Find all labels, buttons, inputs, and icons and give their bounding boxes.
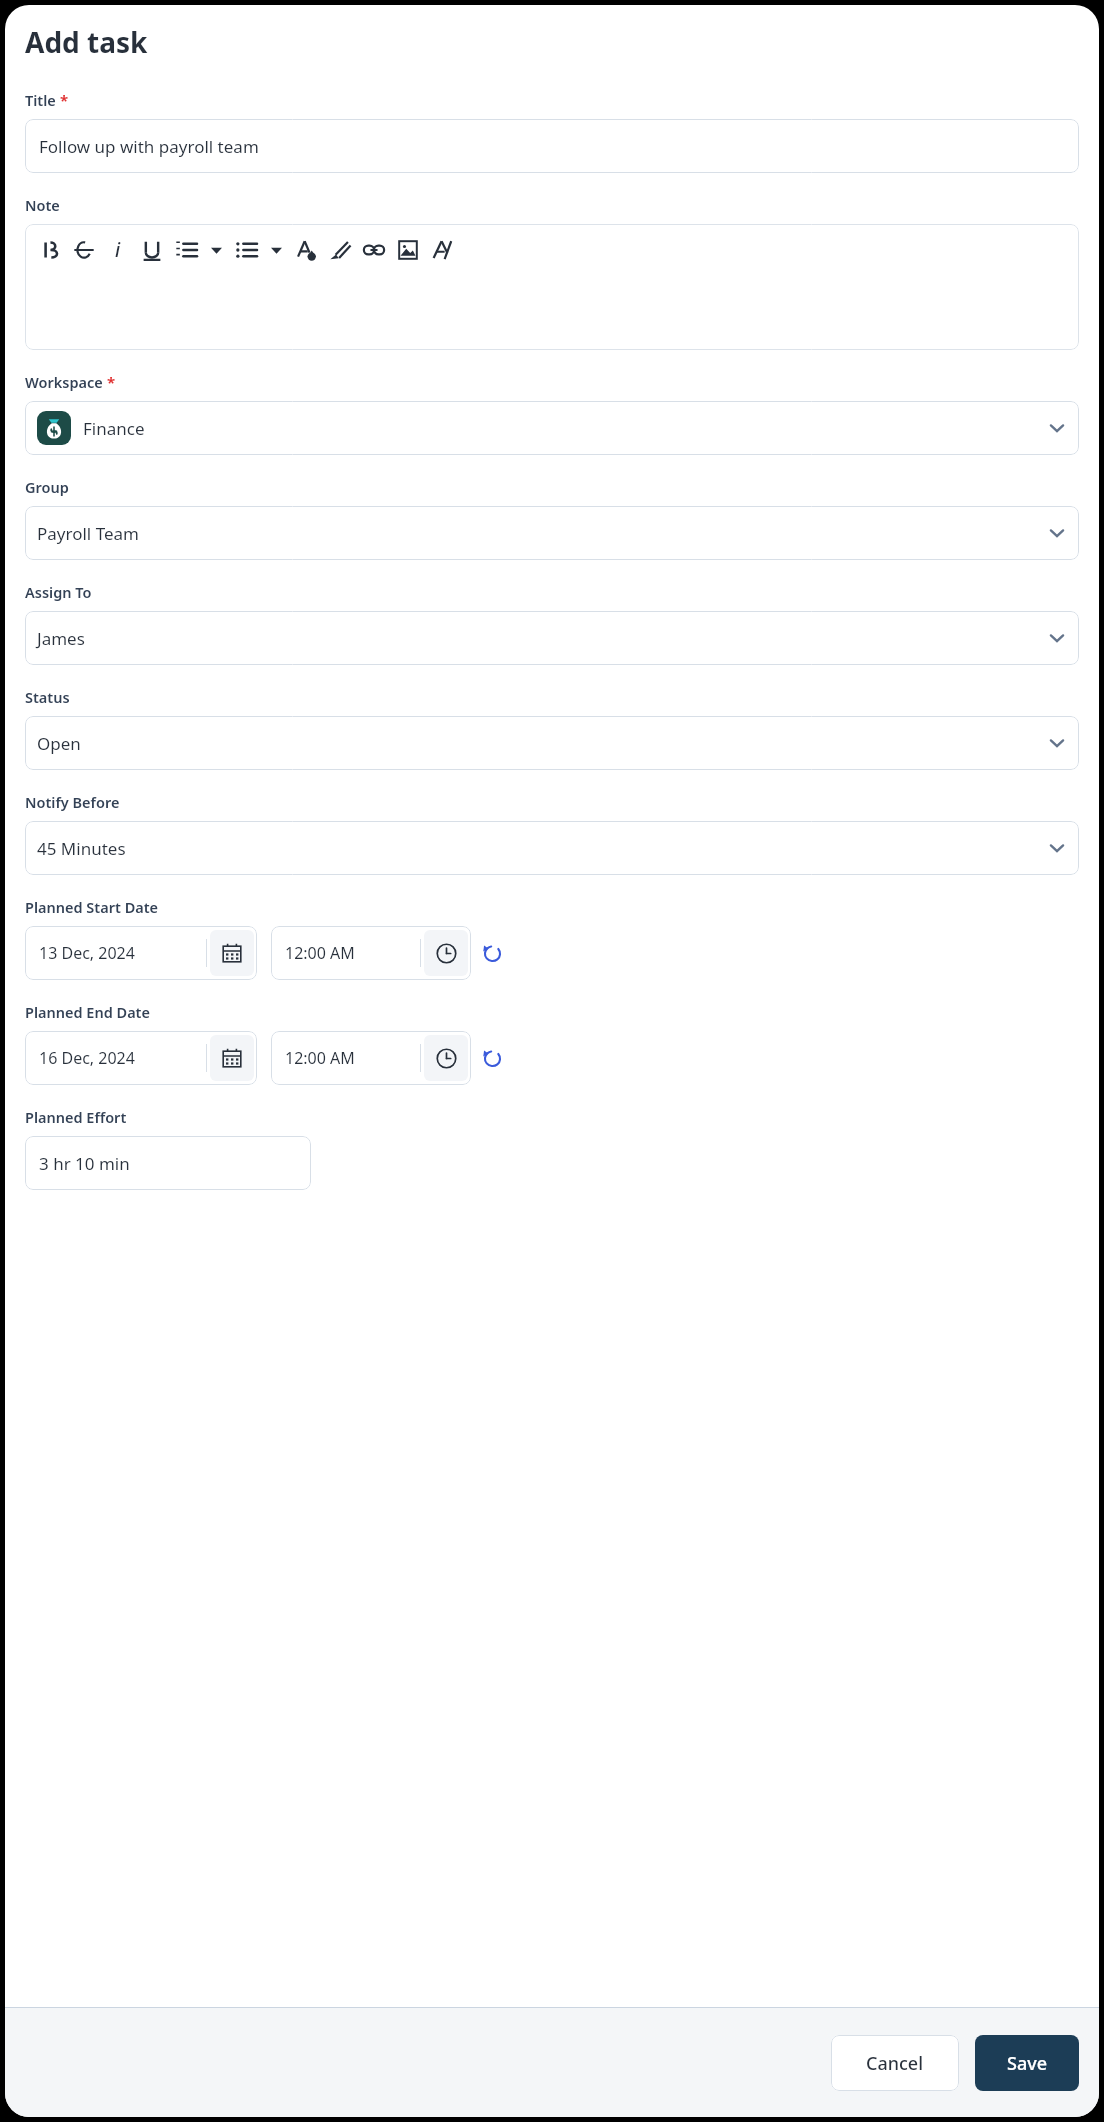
staticText: Workspace [25,372,103,392]
button[interactable]: Save [975,2035,1079,2091]
staticText: Note [25,195,60,215]
staticText: 12:00 AM [285,1047,355,1069]
staticText: Payroll Team [37,522,139,545]
button[interactable]: Underline [135,233,169,267]
staticText: 12:00 AM [285,942,355,964]
button[interactable]: Bulleted list options [263,237,289,263]
button[interactable]: Insert link [357,233,391,267]
staticText: Open [37,732,81,755]
button[interactable]: Finance [25,401,1079,455]
staticText: * [107,372,116,392]
button[interactable]: Reset [477,1043,507,1073]
button[interactable]: Numbered list options [203,237,229,263]
staticText: 3 hr 10 min [39,1152,130,1175]
button[interactable]: Italic [101,233,135,267]
button[interactable]: Payroll Team [25,506,1079,560]
staticText: Status [25,687,70,707]
button[interactable]: Clear formatting [425,233,459,267]
staticText: * [60,90,69,110]
staticText: Planned End Date [25,1002,150,1022]
staticText: Save [1007,2051,1048,2076]
button[interactable]: 13 Dec, 2024 [25,926,257,980]
button[interactable]: Open [25,716,1079,770]
button[interactable]: James [25,611,1079,665]
staticText: Title [25,90,56,110]
button[interactable]: Highlight [323,233,357,267]
staticText: Cancel [866,2051,924,2076]
staticText: 16 Dec, 2024 [39,1047,135,1069]
button[interactable]: 12:00 AM [271,926,471,980]
button[interactable]: Insert image [391,233,425,267]
button[interactable]: Bulleted list [229,233,263,267]
staticText: Assign To [25,582,92,602]
button[interactable]: 12:00 AM [271,1031,471,1085]
staticText: Group [25,477,69,497]
staticText: Planned Effort [25,1107,127,1127]
button[interactable]: Bold [33,233,67,267]
staticText: Finance [83,417,145,440]
button[interactable]: 3 hr 10 min [25,1136,311,1190]
button[interactable]: Strikethrough [67,233,101,267]
staticText: Add task [25,23,148,61]
staticText: 13 Dec, 2024 [39,942,135,964]
button[interactable]: Numbered list [169,233,203,267]
staticText: Notify Before [25,792,120,812]
button[interactable]: 16 Dec, 2024 [25,1031,257,1085]
staticText: i [115,237,121,263]
button[interactable]: Cancel [831,2035,959,2091]
staticText: James [37,627,85,650]
button[interactable]: Follow up with payroll team [25,119,1079,173]
staticText: Follow up with payroll team [39,135,259,158]
button[interactable]: Reset [477,938,507,968]
button[interactable]: 45 Minutes [25,821,1079,875]
staticText: 45 Minutes [37,837,126,860]
staticText: Planned Start Date [25,897,159,917]
button[interactable]: Text color [289,233,323,267]
